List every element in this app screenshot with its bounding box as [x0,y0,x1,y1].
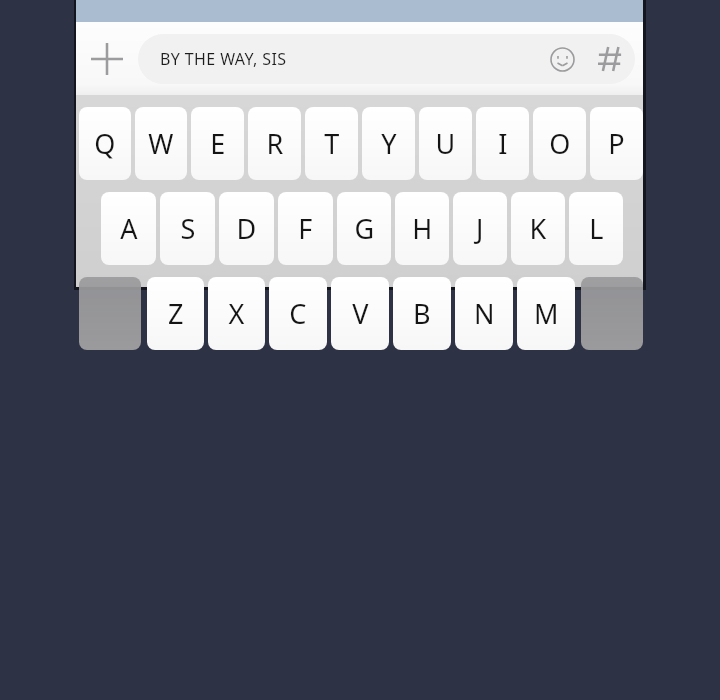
staticText: Z [168,295,184,332]
staticText: S [180,210,196,247]
button[interactable]: B [393,277,451,350]
staticText: C [289,295,307,332]
button[interactable]: S [160,192,215,265]
staticText: B [413,295,431,332]
button[interactable]: A [101,192,156,265]
button[interactable]: K [511,192,565,265]
staticText: I [498,125,508,162]
button[interactable]: P [590,107,643,180]
staticText: P [608,125,625,162]
button[interactable]: D [219,192,274,265]
button[interactable]: F [278,192,333,265]
button[interactable]: N [455,277,513,350]
button[interactable]: W [135,107,187,180]
button[interactable]: U [419,107,472,180]
staticText: J [476,210,484,247]
staticText: K [529,210,547,247]
staticText: V [352,295,369,332]
button[interactable]: R [248,107,301,180]
button[interactable]: C [269,277,327,350]
staticText: F [298,210,313,247]
button[interactable]: M [517,277,575,350]
button[interactable]: V [331,277,389,350]
staticText: BY THE WAY, SIS [160,48,539,70]
staticText: A [120,210,138,247]
button[interactable]: L [569,192,623,265]
staticText: N [474,295,495,332]
button[interactable]: Emoji [539,36,585,82]
staticText: M [534,295,559,332]
staticText: O [549,125,571,162]
staticText: U [435,125,456,162]
staticText: T [324,125,340,162]
button[interactable]: X [208,277,265,350]
button[interactable]: BY THE WAY, SIS [138,34,635,84]
staticText: E [210,125,226,162]
staticText: X [228,295,245,332]
button[interactable]: O [533,107,586,180]
staticText: Y [381,125,397,162]
button[interactable]: G [337,192,391,265]
button[interactable]: Hashtag [585,34,635,84]
staticText: W [148,125,174,162]
button[interactable]: H [395,192,449,265]
button[interactable]: E [191,107,244,180]
staticText: Q [94,125,116,162]
button[interactable]: Add attachment [76,22,138,95]
button[interactable]: J [453,192,507,265]
button[interactable]: Y [362,107,415,180]
staticText: D [236,210,257,247]
staticText: G [354,210,375,247]
button[interactable]: Q [79,107,131,180]
button[interactable]: T [305,107,358,180]
button[interactable]: Shift [79,277,141,350]
button[interactable]: Backspace [581,277,643,350]
staticText: L [589,210,604,247]
button[interactable]: Z [147,277,204,350]
staticText: R [266,125,284,162]
button[interactable]: I [476,107,529,180]
staticText: H [412,210,433,247]
